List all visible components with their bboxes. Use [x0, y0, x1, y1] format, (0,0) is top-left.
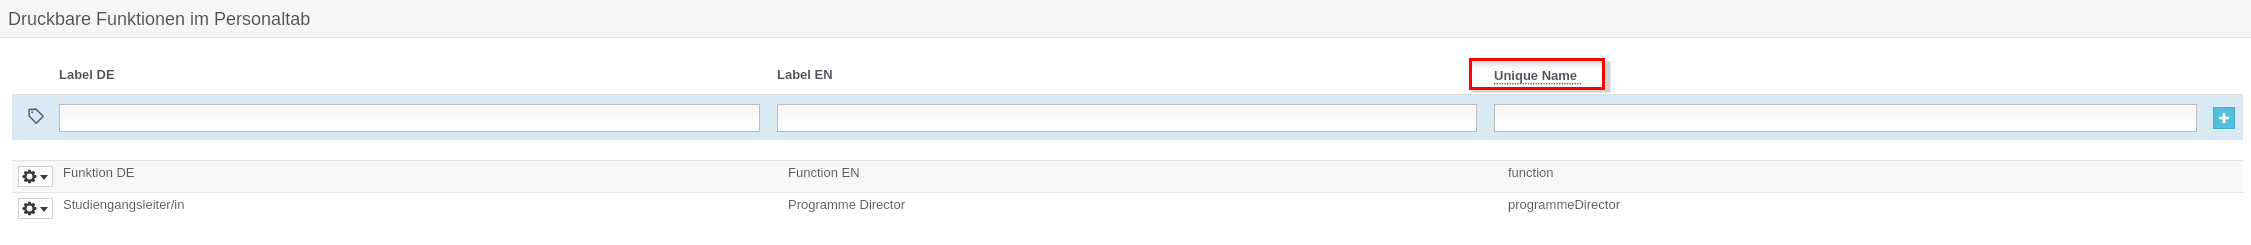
- staticText: programmeDirector: [1508, 197, 1620, 212]
- button[interactable]: Add filter row: [2213, 107, 2235, 129]
- button[interactable]: [59, 104, 760, 132]
- staticText: Studiengangsleiter/in: [63, 197, 185, 212]
- button[interactable]: Row actions menu: [18, 198, 53, 219]
- staticText: Programme Director: [788, 197, 906, 212]
- staticText: Funktion DE: [63, 165, 135, 180]
- button[interactable]: [1494, 104, 2197, 132]
- button[interactable]: Row actions menu: [12, 192, 2243, 224]
- button[interactable]: Row actions menu: [18, 166, 53, 187]
- staticText: Function EN: [788, 165, 860, 180]
- staticText: Unique Name: [1494, 68, 1578, 83]
- staticText: function: [1508, 165, 1554, 180]
- button[interactable]: Filter by tag: [28, 108, 44, 124]
- button[interactable]: [777, 104, 1477, 132]
- button[interactable]: Row actions menu: [12, 160, 2243, 192]
- staticText: Label DE: [59, 67, 115, 82]
- button[interactable]: Unique Name: [1494, 68, 1580, 85]
- staticText: Label EN: [777, 67, 833, 82]
- staticText: Druckbare Funktionen im Personaltab: [8, 9, 311, 29]
